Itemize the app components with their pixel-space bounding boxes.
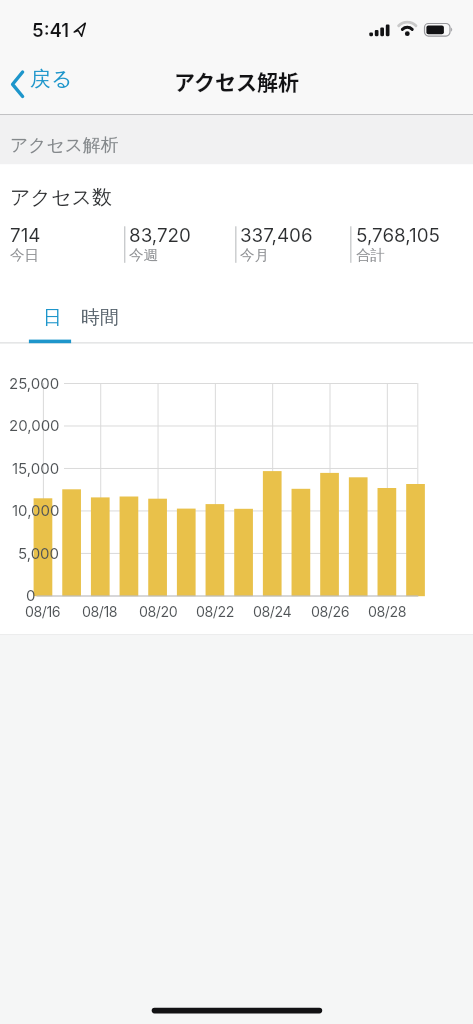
staticText: 0 [26, 586, 36, 604]
staticText: 08/26 [311, 603, 350, 620]
staticText: アクセス解析 [10, 134, 119, 156]
staticText: 今週 [129, 246, 158, 264]
button[interactable] [75, 298, 125, 344]
staticText: 08/18 [82, 603, 118, 620]
staticText: 10,000 [12, 501, 60, 519]
staticText: 08/24 [253, 603, 292, 620]
staticText: アクセス数 [10, 185, 112, 210]
staticText: 時間 [81, 306, 119, 330]
button[interactable] [6, 62, 82, 106]
staticText: 08/28 [368, 603, 407, 620]
staticText: 戻る [30, 66, 73, 92]
staticText: アクセス解析 [174, 66, 299, 96]
staticText: 今日 [10, 246, 39, 264]
staticText: 25,000 [9, 374, 60, 392]
staticText: 5,000 [18, 544, 60, 562]
staticText: 337,406 [240, 224, 313, 247]
staticText: 合計 [356, 246, 385, 264]
staticText: 714 [10, 224, 41, 247]
staticText: 20,000 [9, 416, 60, 434]
staticText: 日 [43, 306, 62, 330]
staticText: 5:41 [32, 19, 70, 41]
button[interactable] [27, 298, 73, 344]
staticText: 今月 [240, 246, 269, 264]
staticText: 83,720 [129, 224, 191, 247]
staticText: 5,768,105 [356, 224, 440, 247]
staticText: 15,000 [12, 459, 60, 477]
staticText: 08/20 [139, 603, 178, 620]
staticText: 08/22 [196, 603, 234, 620]
staticText: 08/16 [25, 603, 61, 620]
